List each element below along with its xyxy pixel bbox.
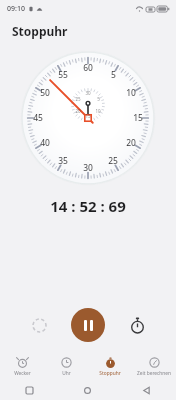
staticText: 15: [133, 112, 143, 124]
staticText: 50: [40, 87, 50, 99]
button[interactable]: Zurücksetzen: [26, 312, 52, 338]
button[interactable]: Pause: [71, 308, 105, 342]
staticText: 20: [126, 137, 136, 149]
staticText: 40: [40, 137, 50, 149]
staticText: Stoppuhr: [99, 370, 121, 377]
staticText: 25: [108, 155, 118, 167]
button[interactable]: Zeit berechnen: [132, 354, 176, 380]
staticText: 60: [83, 62, 93, 74]
staticText: 55: [58, 69, 68, 81]
staticText: 10: [126, 87, 136, 99]
staticText: 30: [85, 90, 91, 96]
button[interactable]: Recents: [0, 380, 58, 400]
staticText: Zeit berechnen: [137, 370, 171, 377]
staticText: 5: [111, 69, 116, 81]
staticText: 20: [75, 108, 81, 114]
staticText: 35: [58, 155, 68, 167]
button[interactable]: Runde: [124, 312, 150, 338]
staticText: 45: [33, 112, 43, 124]
staticText: 5: [97, 96, 100, 102]
button[interactable]: Home: [58, 380, 117, 400]
staticText: 14 : 52 : 69: [0, 196, 176, 216]
staticText: 09:10: [7, 4, 25, 14]
staticText: 15: [85, 113, 91, 119]
staticText: 30: [83, 162, 93, 174]
staticText: 10: [95, 108, 101, 114]
staticText: Uhr: [62, 370, 71, 377]
staticText: Stoppuhr: [12, 23, 68, 39]
staticText: Wecker: [14, 370, 31, 377]
button[interactable]: Back: [117, 380, 176, 400]
button[interactable]: Uhr: [44, 354, 88, 380]
button[interactable]: Stoppuhr: [88, 354, 132, 380]
button[interactable]: Wecker: [0, 354, 44, 380]
staticText: 25: [75, 96, 81, 102]
